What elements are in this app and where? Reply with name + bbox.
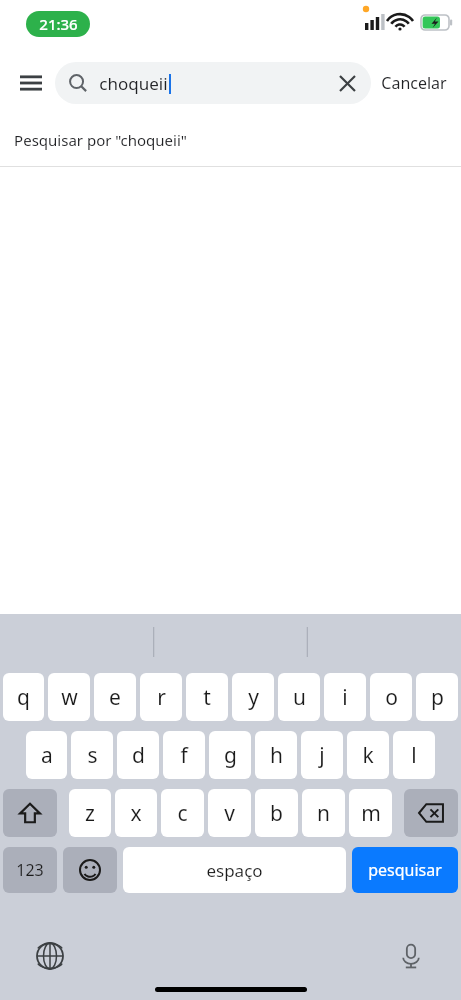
button[interactable]: Ditado por voz: [389, 934, 433, 978]
staticText: h: [270, 741, 283, 770]
staticText: a: [41, 741, 53, 770]
button[interactable]: o: [370, 673, 412, 721]
staticText: z: [85, 799, 95, 828]
staticText: m: [361, 799, 381, 828]
button[interactable]: h: [255, 731, 297, 779]
staticText: s: [87, 741, 98, 770]
button[interactable]: g: [209, 731, 251, 779]
staticText: b: [270, 799, 283, 828]
button[interactable]: m: [349, 789, 392, 837]
staticText: n: [317, 799, 330, 828]
staticText: r: [157, 683, 166, 712]
staticText: k: [362, 741, 374, 770]
staticText: p: [431, 683, 444, 712]
button[interactable]: e: [94, 673, 136, 721]
button[interactable]: i: [324, 673, 366, 721]
button[interactable]: Backspace: [404, 789, 458, 837]
staticText: q: [17, 683, 30, 712]
staticText: pesquisar: [368, 859, 442, 881]
button[interactable]: b: [255, 789, 298, 837]
staticText: c: [177, 799, 188, 828]
button[interactable]: s: [71, 731, 113, 779]
staticText: u: [293, 683, 306, 712]
button[interactable]: p: [416, 673, 458, 721]
staticText: Pesquisar por "choqueii": [14, 130, 187, 150]
button[interactable]: r: [140, 673, 182, 721]
button[interactable]: v: [208, 789, 251, 837]
button[interactable]: Shift: [3, 789, 57, 837]
button[interactable]: k: [347, 731, 389, 779]
staticText: f: [180, 741, 188, 770]
staticText: i: [342, 683, 348, 712]
button[interactable]: t: [186, 673, 228, 721]
button[interactable]: 123: [3, 847, 57, 893]
button[interactable]: l: [393, 731, 435, 779]
button[interactable]: c: [161, 789, 204, 837]
staticText: y: [248, 683, 259, 712]
button[interactable]: Emoji: [63, 847, 117, 893]
button[interactable]: q: [3, 673, 44, 721]
staticText: l: [411, 741, 417, 770]
button[interactable]: u: [278, 673, 320, 721]
button[interactable]: j: [301, 731, 343, 779]
staticText: Cancelar: [381, 72, 447, 94]
staticText: j: [319, 741, 325, 770]
button[interactable]: d: [117, 731, 159, 779]
button[interactable]: espaço: [123, 847, 346, 893]
button[interactable]: n: [302, 789, 345, 837]
button[interactable]: Mudar idioma: [28, 934, 72, 978]
button[interactable]: x: [115, 789, 157, 837]
button[interactable]: z: [69, 789, 111, 837]
staticText: e: [109, 683, 121, 712]
staticText: 21:36: [39, 14, 78, 34]
staticText: d: [132, 741, 145, 770]
staticText: w: [61, 683, 78, 712]
button[interactable]: f: [163, 731, 205, 779]
button[interactable]: y: [232, 673, 274, 721]
button[interactable]: a: [26, 731, 67, 779]
button[interactable]: w: [48, 673, 90, 721]
button[interactable]: Limpar: [327, 63, 367, 103]
button[interactable]: Menu: [10, 62, 52, 104]
button[interactable]: Pesquisar por "choqueii": [0, 114, 461, 166]
button[interactable]: Cancelar: [373, 62, 455, 104]
staticText: g: [224, 741, 237, 770]
button[interactable]: choqueii: [55, 62, 371, 104]
staticText: v: [224, 799, 235, 828]
staticText: 123: [16, 859, 44, 881]
staticText: t: [203, 683, 211, 712]
staticText: o: [385, 683, 398, 712]
button[interactable]: pesquisar: [352, 847, 458, 893]
staticText: x: [130, 799, 142, 828]
staticText: espaço: [206, 859, 263, 882]
staticText: choqueii: [99, 72, 168, 95]
